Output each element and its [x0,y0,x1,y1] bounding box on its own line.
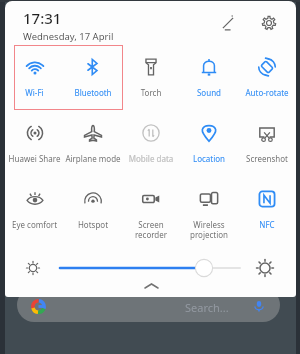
staticText: Huawei Share [5,153,64,164]
button[interactable]: Wireless projection [180,177,238,243]
staticText: Sound [180,87,238,98]
button[interactable]: Eye comfort [5,177,64,243]
button[interactable]: Collapse [131,279,171,293]
staticText: Mobile data [122,153,180,164]
button[interactable]: Location [180,111,238,177]
staticText: Torch [122,87,180,98]
staticText: 17:31 [23,8,62,28]
button[interactable]: NFC [238,177,296,243]
staticText: Auto-rotate [238,87,296,98]
staticText: Wi-Fi [5,87,64,98]
button[interactable]: Bluetooth [64,45,122,111]
staticText: Wednesday, 17 April [23,30,114,43]
staticText: Airplane mode [64,153,122,164]
staticText: Eye comfort [5,219,64,230]
button[interactable]: Edit [215,10,241,36]
staticText: Wireless projection [180,219,238,240]
button[interactable]: Settings [256,10,282,36]
button[interactable]: Hotspot [64,177,122,243]
staticText: Hotspot [64,219,122,230]
button[interactable] [50,256,250,280]
button[interactable]: Huawei Share [5,111,64,177]
staticText: Search... [185,300,229,315]
button[interactable]: Auto-rotate [238,45,296,111]
staticText: Location [180,153,238,164]
staticText: Bluetooth [64,87,122,98]
staticText: Screen recorder [122,219,180,240]
button[interactable]: Torch [122,45,180,111]
staticText: NFC [238,219,296,230]
button[interactable]: Screenshot [238,111,296,177]
button[interactable]: Screen recorder [122,177,180,243]
staticText: Screenshot [238,153,296,164]
button[interactable]: Mobile data [122,111,180,177]
button[interactable]: Wi-Fi [5,45,64,111]
button[interactable]: Sound [180,45,238,111]
button[interactable]: Airplane mode [64,111,122,177]
